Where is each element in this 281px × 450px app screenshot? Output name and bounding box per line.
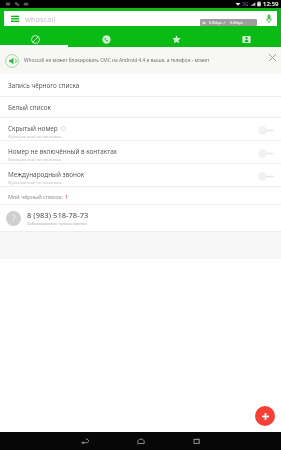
staticText: Международный звонок <box>8 170 85 179</box>
button[interactable]: Blocked <box>0 28 71 47</box>
button[interactable]: Номер не включённый в контактах <box>0 141 281 164</box>
button[interactable]: Белый список <box>0 97 281 118</box>
button[interactable]: Close banner <box>264 49 280 65</box>
button[interactable]: Скрытый номер <box>0 118 281 141</box>
staticText: 12:59 <box>263 0 279 8</box>
staticText: Функция ещё не началась <box>8 180 62 186</box>
staticText: whoscall <box>25 14 56 24</box>
staticText: Мой чёрный список: <box>8 193 63 200</box>
staticText: Whoscall не может блокировать СМС на And… <box>24 57 264 64</box>
staticText: 0.0kbps <box>209 20 222 25</box>
staticText: ? <box>12 213 16 224</box>
staticText: 1 <box>65 193 69 200</box>
button[interactable]: Международный звонок <box>0 164 281 187</box>
button[interactable]: ? <box>0 205 281 232</box>
staticText: Заблокировать только звонки <box>27 221 87 227</box>
staticText: 0.0kbps <box>230 20 243 25</box>
button[interactable]: Recent apps <box>185 432 209 450</box>
staticText: Запись чёрного списка <box>8 81 80 90</box>
staticText: ✓ <box>223 21 226 25</box>
staticText: Номер не включённый в контактах <box>8 147 117 156</box>
staticText: Скрытый номер <box>8 124 58 133</box>
staticText: 3G <box>242 1 249 8</box>
staticText: Функция ещё не началась <box>8 157 62 163</box>
staticText: 8 (983) 518-78-73 <box>27 210 89 220</box>
button[interactable]: Recent calls <box>71 28 141 47</box>
button[interactable]: whoscall <box>4 11 277 26</box>
button[interactable]: Запись чёрного списка <box>0 74 281 97</box>
button[interactable]: Add to blacklist <box>255 406 275 426</box>
button[interactable]: Back <box>73 432 97 450</box>
button[interactable]: Favourites <box>141 28 211 47</box>
button[interactable]: Home <box>129 432 153 450</box>
button[interactable]: Contacts <box>211 28 281 47</box>
staticText: Белый список <box>8 103 51 112</box>
staticText: Функция ещё не началась <box>8 134 62 140</box>
